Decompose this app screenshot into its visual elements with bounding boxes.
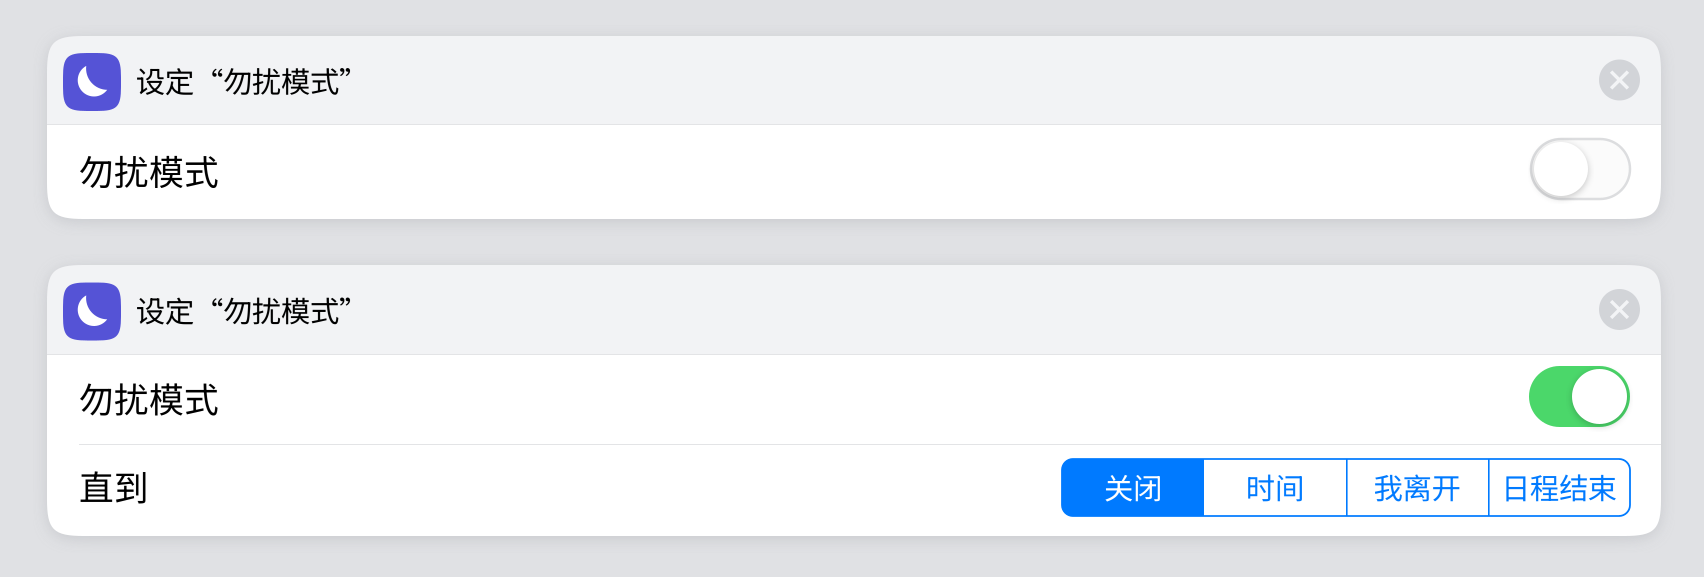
staticText: 日程结束: [1501, 465, 1617, 508]
staticText: 时间: [1246, 465, 1304, 508]
staticText: 设定“勿扰模式”: [136, 288, 368, 331]
button[interactable]: 日程结束: [1488, 459, 1630, 516]
button[interactable]: 时间: [1204, 459, 1346, 516]
button[interactable]: 勿扰模式: [47, 355, 1661, 444]
staticText: 我离开: [1373, 465, 1460, 508]
button[interactable]: 勿扰模式: [47, 125, 1661, 219]
button[interactable]: 移除此操作: [1599, 289, 1640, 330]
staticText: 勿扰模式: [79, 145, 219, 195]
button[interactable]: 勿扰模式，已开启: [1529, 366, 1630, 427]
button[interactable]: 移除此操作: [1599, 59, 1640, 100]
button[interactable]: 我离开: [1346, 459, 1488, 516]
staticText: 关闭: [1104, 465, 1162, 508]
staticText: 设定“勿扰模式”: [136, 59, 368, 101]
button[interactable]: 关闭: [1062, 459, 1204, 516]
staticText: 直到: [79, 460, 149, 511]
staticText: 勿扰模式: [79, 372, 219, 423]
button[interactable]: 勿扰模式，已关闭: [1531, 139, 1630, 199]
